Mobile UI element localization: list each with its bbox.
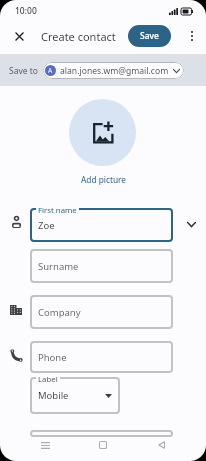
button[interactable]: Recents — [32, 433, 58, 457]
button[interactable]: Add picture — [69, 99, 136, 166]
staticText: Save — [140, 30, 159, 42]
button[interactable]: Expand name fields — [179, 212, 203, 236]
staticText: 10:00 — [15, 5, 37, 17]
button[interactable]: Close — [6, 23, 32, 49]
staticText: First name — [38, 205, 77, 216]
button[interactable] — [30, 377, 120, 414]
staticText: Add picture — [81, 174, 126, 185]
staticText: Mobile — [38, 389, 69, 402]
staticText: Phone — [38, 351, 67, 364]
button[interactable]: More options — [180, 24, 204, 48]
staticText: A — [48, 66, 53, 75]
staticText: alan.jones.wm@gmail.com — [60, 65, 169, 77]
button[interactable]: Back — [148, 433, 174, 457]
button[interactable]: A — [43, 62, 184, 79]
staticText: Company — [38, 306, 81, 319]
button[interactable] — [30, 208, 173, 242]
staticText: Surname — [38, 260, 79, 273]
button[interactable] — [30, 295, 173, 329]
button[interactable]: Save — [128, 25, 171, 47]
staticText: Create contact — [41, 29, 116, 44]
button[interactable] — [30, 249, 173, 283]
staticText: Save to — [9, 65, 38, 77]
button[interactable] — [30, 430, 173, 437]
button[interactable] — [30, 341, 173, 373]
staticText: Label — [38, 374, 58, 385]
button[interactable]: Home — [90, 433, 116, 457]
staticText: Zoe — [38, 219, 55, 232]
